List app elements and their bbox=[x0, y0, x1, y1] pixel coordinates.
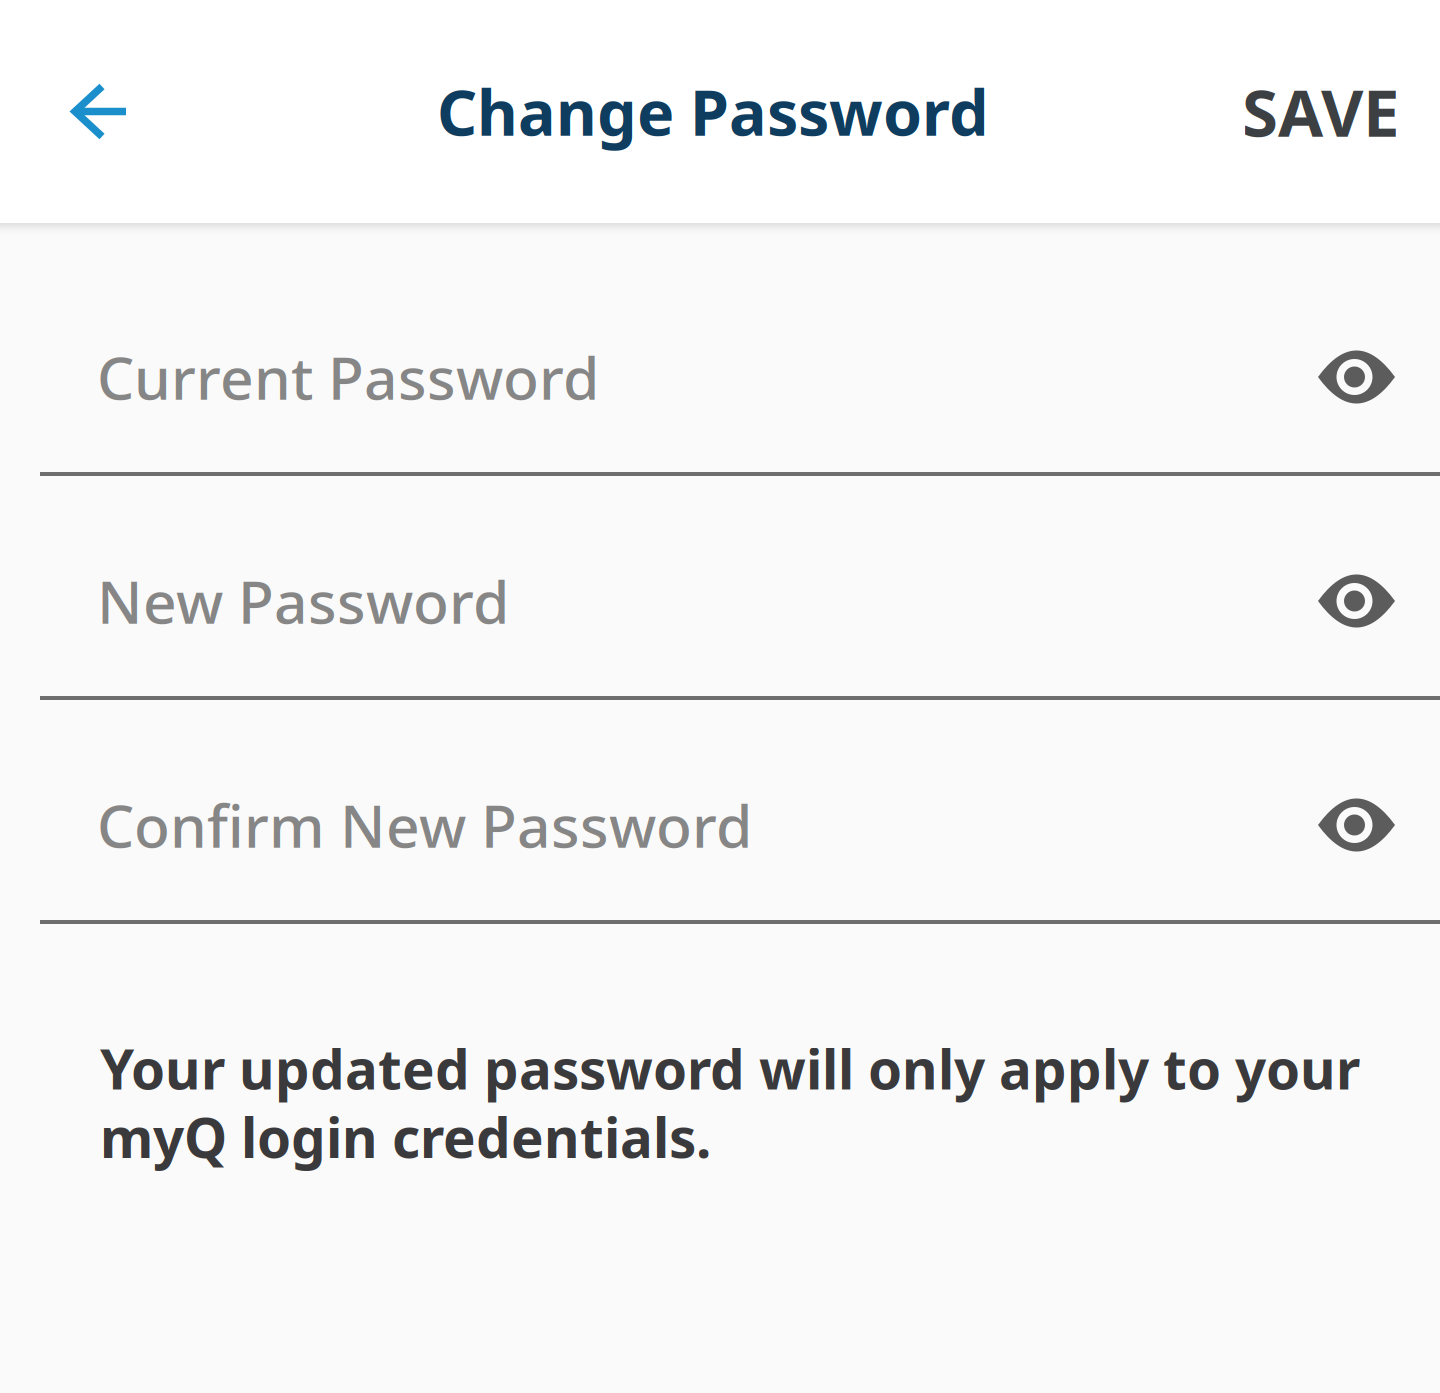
staticText: Current Password bbox=[97, 338, 599, 416]
button[interactable]: Back bbox=[0, 43, 157, 179]
button[interactable]: New Password bbox=[0, 506, 1296, 696]
staticText: SAVE bbox=[1242, 68, 1400, 155]
button[interactable]: Show Confirm New Password bbox=[1296, 775, 1417, 875]
button[interactable]: Show Current Password bbox=[1296, 327, 1417, 427]
button[interactable]: Show New Password bbox=[1296, 551, 1417, 651]
button[interactable]: SAVE bbox=[1212, 28, 1440, 195]
staticText: Your updated password will only apply to… bbox=[100, 1032, 1360, 1105]
button[interactable]: Confirm New Password bbox=[0, 730, 1296, 920]
staticText: myQ login credentials. bbox=[100, 1101, 711, 1173]
staticText: New Password bbox=[97, 562, 509, 640]
button[interactable]: Current Password bbox=[0, 282, 1296, 472]
staticText: Change Password bbox=[437, 70, 989, 153]
staticText: Confirm New Password bbox=[97, 786, 752, 864]
